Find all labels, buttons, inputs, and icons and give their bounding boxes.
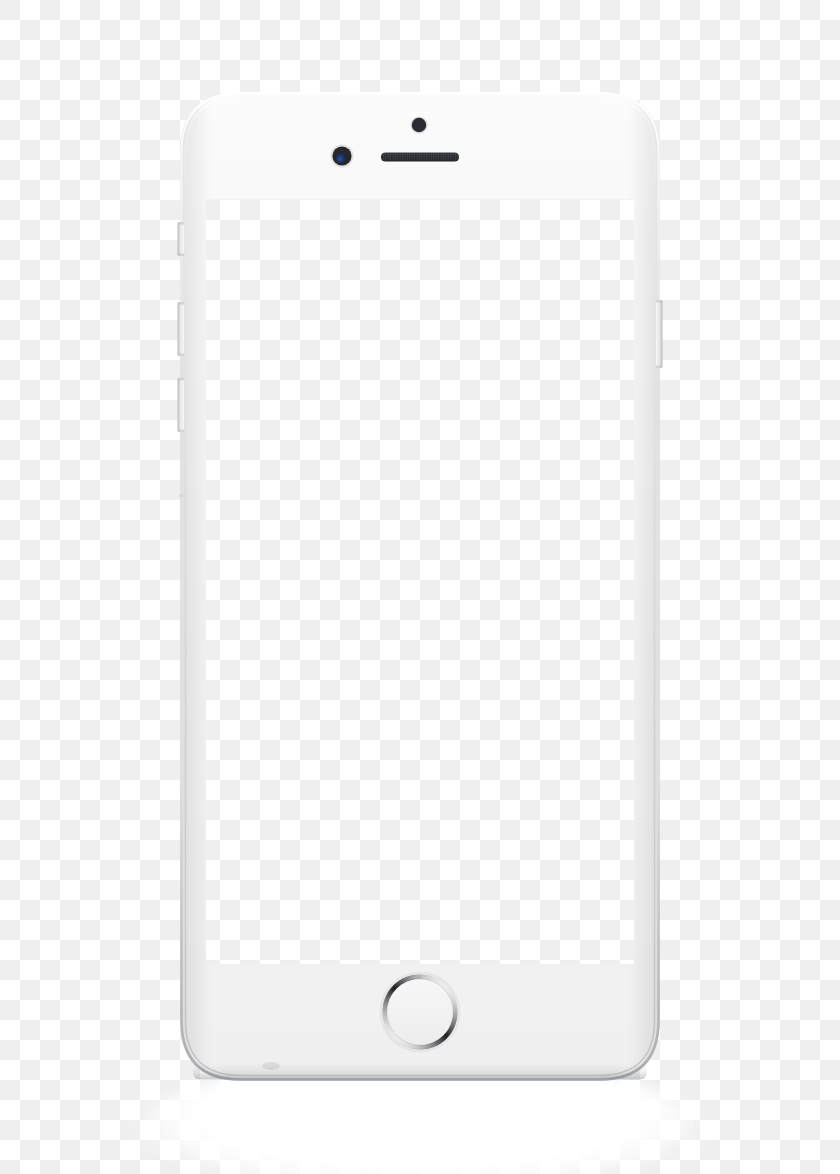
button[interactable]: iPhone device mockup with transparent sc… <box>0 0 840 1174</box>
